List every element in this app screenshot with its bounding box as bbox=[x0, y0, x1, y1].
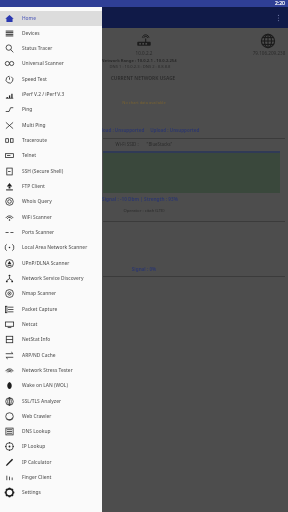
button[interactable]: WiFi Scanner bbox=[0, 210, 102, 225]
staticText: SSH (Secure Shell) bbox=[22, 168, 64, 175]
staticText: UPnP/DLNA Scanner bbox=[22, 260, 70, 267]
staticText: Web Crawler bbox=[22, 413, 52, 420]
button[interactable]: IP Lookup bbox=[0, 439, 102, 454]
button[interactable]: Local Area Network Scanner bbox=[0, 240, 102, 255]
staticText: 2:20 bbox=[275, 0, 285, 7]
button[interactable]: Multi Ping bbox=[0, 118, 102, 133]
staticText: Signal : 0% bbox=[34, 266, 254, 272]
button[interactable]: SSH (Secure Shell) bbox=[0, 164, 102, 179]
staticText: Nmap Scanner bbox=[22, 290, 57, 297]
button[interactable]: Nmap Scanner bbox=[0, 286, 102, 301]
staticText: Download : Unsupported Upload : Unsuppor… bbox=[34, 127, 254, 133]
staticText: DNS Lookup bbox=[22, 428, 51, 435]
button[interactable]: Network Stress Tester bbox=[0, 363, 102, 378]
staticText: DNS 1 : 10.0.2.3 : DNS 2 : 8.8.8.8 bbox=[30, 64, 250, 70]
staticText: Finger Client bbox=[22, 474, 52, 481]
staticText: 79.106.209.238 bbox=[159, 50, 288, 56]
button[interactable]: Whois Query bbox=[0, 194, 102, 209]
staticText: Network Range : 10.0.2.1 - 10.0.2.254 bbox=[29, 58, 249, 64]
button[interactable]: IP Calculator bbox=[0, 455, 102, 470]
button[interactable]: FTP Client bbox=[0, 179, 102, 194]
button[interactable]: More options bbox=[270, 7, 286, 28]
staticText: Devices bbox=[22, 30, 40, 37]
staticText: CURRENT NETWORK USAGE bbox=[33, 75, 253, 82]
staticText: Home bbox=[22, 15, 36, 22]
button[interactable]: DNS Lookup bbox=[0, 424, 102, 439]
button[interactable]: Home bbox=[0, 11, 102, 26]
staticText: IP Calculator bbox=[22, 459, 52, 466]
staticText: Signal : -10 Dbm | Strength : 93% bbox=[30, 196, 250, 202]
staticText: Network Service Discovery bbox=[22, 275, 84, 282]
staticText: Wake on LAN (WOL) bbox=[22, 382, 68, 389]
staticText: FTP Client bbox=[22, 183, 45, 190]
button[interactable]: Devices bbox=[0, 26, 102, 41]
staticText: Whois Query bbox=[22, 198, 52, 205]
button[interactable]: Telnet bbox=[0, 148, 102, 163]
staticText: iPerf V.2 / iPerf V.3 bbox=[22, 91, 65, 98]
button[interactable]: iPerf V.2 / iPerf V.3 bbox=[0, 87, 102, 102]
staticText: Multi Ping bbox=[22, 122, 46, 129]
staticText: Wi-Fi SSID : "BlueStacks" bbox=[34, 141, 254, 147]
staticText: NetStat Info bbox=[22, 336, 51, 343]
staticText: Traceroute bbox=[22, 137, 47, 144]
button[interactable]: UPnP/DLNA Scanner bbox=[0, 256, 102, 271]
button[interactable]: Settings bbox=[0, 485, 102, 500]
staticText: 10.0.2.2 bbox=[34, 50, 254, 56]
button[interactable]: SSL/TLS Analyzer bbox=[0, 394, 102, 409]
staticText: Netcat bbox=[22, 321, 38, 328]
staticText: Local Area Network Scanner bbox=[22, 244, 88, 251]
staticText: Ports Scanner bbox=[22, 229, 55, 236]
staticText: Telnet bbox=[22, 152, 37, 159]
staticText: IP Lookup bbox=[22, 443, 46, 450]
button[interactable]: ARP/ND Cache bbox=[0, 348, 102, 363]
button[interactable]: Netcat bbox=[0, 317, 102, 332]
button[interactable]: Finger Client bbox=[0, 470, 102, 485]
staticText: Ping bbox=[22, 106, 33, 113]
staticText: WiFi Scanner bbox=[22, 214, 52, 221]
button[interactable]: Ports Scanner bbox=[0, 225, 102, 240]
button[interactable]: Packet Capture bbox=[0, 302, 102, 317]
staticText: Network Stress Tester bbox=[22, 367, 73, 374]
staticText: Operator : citah (LTE) bbox=[34, 208, 254, 214]
button[interactable]: Speed Test bbox=[0, 72, 102, 87]
button[interactable]: Status Tracer bbox=[0, 41, 102, 56]
staticText: Universal Scanner bbox=[22, 60, 64, 67]
staticText: Speed Test bbox=[22, 76, 47, 83]
button[interactable]: Network Service Discovery bbox=[0, 271, 102, 286]
staticText: SSL/TLS Analyzer bbox=[22, 398, 61, 405]
button[interactable]: Wake on LAN (WOL) bbox=[0, 378, 102, 393]
staticText: Status Tracer bbox=[22, 45, 53, 52]
button[interactable]: Traceroute bbox=[0, 133, 102, 148]
button[interactable]: Universal Scanner bbox=[0, 56, 102, 71]
staticText: Packet Capture bbox=[22, 306, 58, 313]
button[interactable]: Ping bbox=[0, 102, 102, 117]
button[interactable]: Web Crawler bbox=[0, 409, 102, 424]
staticText: No chart data available bbox=[34, 100, 254, 105]
button[interactable]: NetStat Info bbox=[0, 332, 102, 347]
staticText: ARP/ND Cache bbox=[22, 352, 56, 359]
staticText: Settings bbox=[22, 489, 41, 496]
